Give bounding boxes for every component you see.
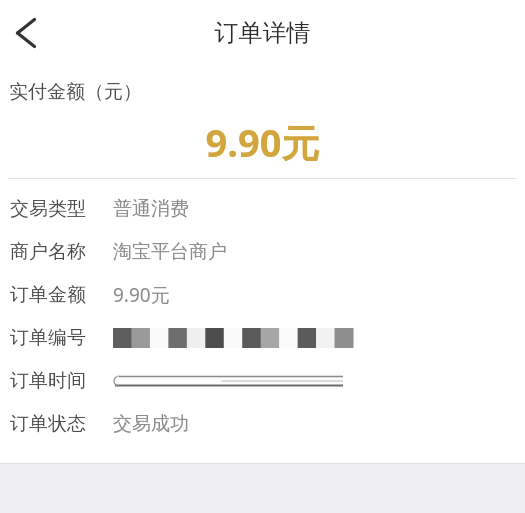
button[interactable]: 订单金额 (0, 273, 525, 316)
button[interactable]: 订单编号 (0, 316, 525, 359)
staticText: 订单详情 (0, 18, 525, 48)
staticText: 9.90元 (0, 116, 525, 168)
button[interactable]: Back (4, 12, 44, 52)
staticText: 交易类型 (10, 197, 86, 221)
staticText: 订单状态 (10, 412, 86, 436)
staticText: 订单时间 (10, 369, 86, 393)
staticText: 商户名称 (10, 240, 86, 264)
staticText: 普通消费 (113, 197, 189, 221)
button[interactable]: 商户名称 (0, 230, 525, 273)
staticText: 交易成功 (113, 412, 189, 436)
staticText: 订单金额 (10, 283, 86, 307)
staticText: 9.90元 (113, 282, 170, 308)
staticText: 淘宝平台商户 (113, 240, 227, 264)
staticText: 订单编号 (10, 326, 86, 350)
staticText: 实付金额（元） (9, 80, 142, 104)
button[interactable]: 订单状态 (0, 402, 525, 445)
button[interactable]: 交易类型 (0, 187, 525, 230)
button[interactable]: 订单时间 (0, 359, 525, 402)
